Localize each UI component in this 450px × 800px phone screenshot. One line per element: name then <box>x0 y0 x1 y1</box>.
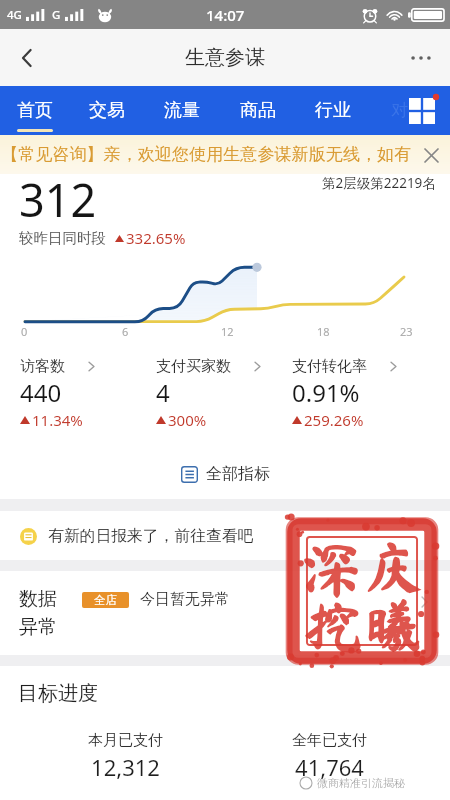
button[interactable]: 数据 <box>0 571 450 655</box>
staticText: 交易 <box>89 99 125 122</box>
button[interactable]: Back <box>4 35 50 81</box>
button[interactable]: 交易 <box>74 86 140 135</box>
staticText: 较昨日同时段 <box>19 229 106 247</box>
staticText: 4 <box>156 376 170 409</box>
staticText: 数据 <box>19 587 57 611</box>
staticText: 332.65% <box>126 228 186 248</box>
staticText: 挖 <box>304 597 363 655</box>
button[interactable]: More options <box>398 35 444 81</box>
staticText: 首页 <box>17 99 53 122</box>
staticText: 【常见咨询】亲，欢迎您使用生意参谋新版无线，如有 <box>1 144 412 166</box>
button[interactable]: 全部指标 <box>171 460 280 488</box>
staticText: 23 <box>400 324 413 339</box>
staticText: 庆 <box>365 537 424 595</box>
staticText: 今日暂无异常 <box>140 590 230 609</box>
button[interactable]: 全年已支付 <box>269 731 389 782</box>
staticText: 全年已支付 <box>292 731 367 750</box>
button[interactable]: 访客数 <box>20 357 152 430</box>
button[interactable]: 本月已支付 <box>65 731 185 782</box>
button[interactable]: 支付转化率 <box>292 357 424 430</box>
staticText: 微商精准引流揭秘 <box>317 776 405 790</box>
button[interactable]: 商品 <box>225 86 291 135</box>
button[interactable]: 首页 <box>2 86 68 135</box>
button[interactable]: 流量 <box>149 86 215 135</box>
staticText: 0.91% <box>292 376 360 409</box>
staticText: 312 <box>19 169 97 230</box>
button[interactable]: 【常见咨询】亲，欢迎您使用生意参谋新版无线，如有 <box>0 135 450 174</box>
staticText: 支付买家数 <box>156 357 231 376</box>
staticText: 支付转化率 <box>292 357 367 376</box>
staticText: 行业 <box>315 99 351 122</box>
staticText: 6 <box>122 324 129 339</box>
staticText: 有新的日报来了，前往查看吧 <box>48 526 254 546</box>
button[interactable]: 支付买家数 <box>156 357 288 430</box>
staticText: 12 <box>221 324 234 339</box>
staticText: 259.26% <box>304 410 364 430</box>
staticText: 4G <box>7 7 22 23</box>
button[interactable]: Close banner <box>416 140 446 170</box>
button[interactable]: All sections <box>402 91 442 131</box>
staticText: 流量 <box>164 99 200 122</box>
staticText: 11.34% <box>32 410 83 430</box>
staticText: 300% <box>168 410 207 430</box>
staticText: 440 <box>20 376 62 409</box>
staticText: 18 <box>317 324 330 339</box>
staticText: 商品 <box>240 99 276 122</box>
staticText: 全部指标 <box>206 464 270 484</box>
staticText: 曦 <box>365 595 424 653</box>
staticText: 0 <box>21 324 28 339</box>
staticText: 第2层级第22219名 <box>322 174 436 192</box>
staticText: 41,764 <box>295 752 364 782</box>
button[interactable]: 行业 <box>300 86 366 135</box>
button[interactable]: 有新的日报来了，前往查看吧 <box>0 511 450 560</box>
staticText: 14:07 <box>206 5 245 25</box>
staticText: 对 <box>391 100 408 121</box>
staticText: 生意参谋 <box>185 45 265 70</box>
staticText: 全店 <box>94 593 117 607</box>
staticText: 访客数 <box>20 357 65 376</box>
staticText: 12,312 <box>91 752 160 782</box>
staticText: 异常 <box>19 615 57 639</box>
staticText: G <box>52 7 61 23</box>
staticText: 深 <box>302 541 361 599</box>
staticText: 本月已支付 <box>88 731 163 750</box>
staticText: 目标进度 <box>18 681 98 706</box>
